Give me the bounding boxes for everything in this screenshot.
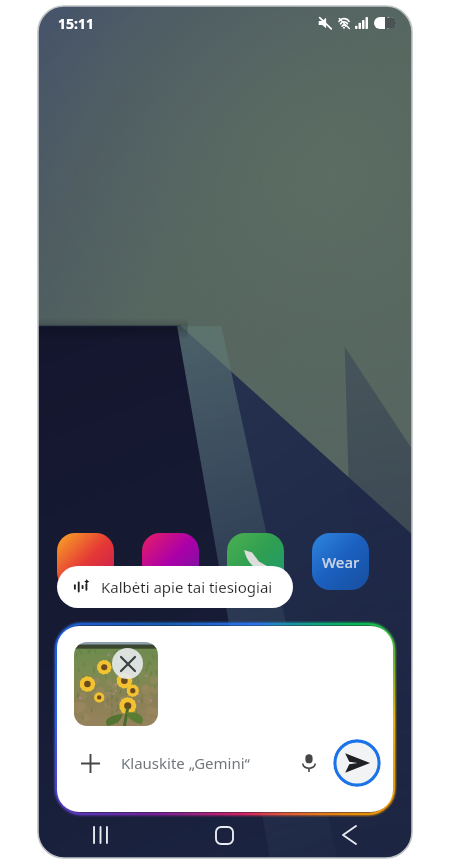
button[interactable]: Send (333, 739, 381, 787)
button[interactable]: Home (162, 812, 287, 858)
button[interactable]: Add (73, 746, 107, 780)
button[interactable]: Wear app (312, 533, 369, 590)
staticText: 15:11 (58, 14, 94, 33)
button[interactable]: Back (287, 812, 412, 858)
staticText: Klauskite „Gemini“ (121, 753, 291, 773)
button[interactable]: Voice input (291, 745, 327, 781)
button[interactable]: Recent apps (38, 812, 162, 858)
button[interactable]: Remove image (112, 648, 143, 679)
button[interactable]: Kalbėti apie tai tiesiogiai (57, 566, 293, 608)
staticText: Wear (322, 552, 360, 572)
staticText: Kalbėti apie tai tiesiogiai (101, 577, 273, 597)
button[interactable]: Attached image (74, 642, 158, 726)
